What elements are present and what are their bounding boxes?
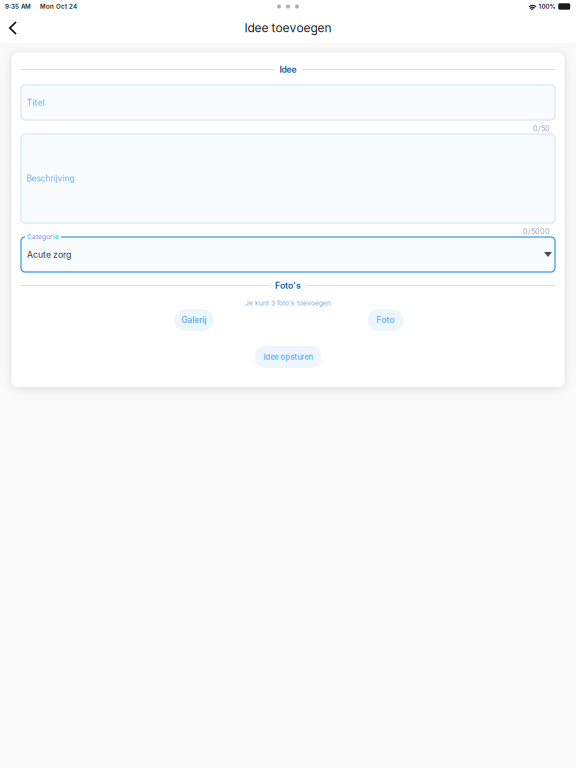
- staticText: Mon Oct 24: [40, 3, 77, 10]
- staticText: 100%: [538, 3, 555, 10]
- staticText: 9:35 AM: [5, 3, 31, 10]
- button[interactable]: Acute zorg: [21, 237, 555, 272]
- staticText: Acute zorg: [27, 249, 71, 260]
- staticText: Foto's: [275, 280, 301, 291]
- staticText: Foto: [376, 315, 394, 325]
- staticText: Idee opsturen: [263, 353, 312, 362]
- staticText: Titel: [26, 97, 44, 108]
- staticText: Idee: [279, 64, 296, 75]
- staticText: Categorie: [27, 233, 59, 241]
- staticText: Idee toevoegen: [244, 21, 331, 35]
- button[interactable]: Idee opsturen: [254, 346, 321, 368]
- staticText: 0/5000: [523, 227, 550, 236]
- button[interactable]: Foto: [367, 309, 403, 331]
- button[interactable]: Galerij: [174, 309, 213, 331]
- button[interactable]: Back: [0, 17, 28, 43]
- staticText: 0/50: [533, 124, 550, 133]
- staticText: Galerij: [181, 315, 206, 325]
- staticText: Je kunt 3 foto's toevoegen: [245, 299, 331, 307]
- staticText: Beschrijving: [26, 173, 74, 183]
